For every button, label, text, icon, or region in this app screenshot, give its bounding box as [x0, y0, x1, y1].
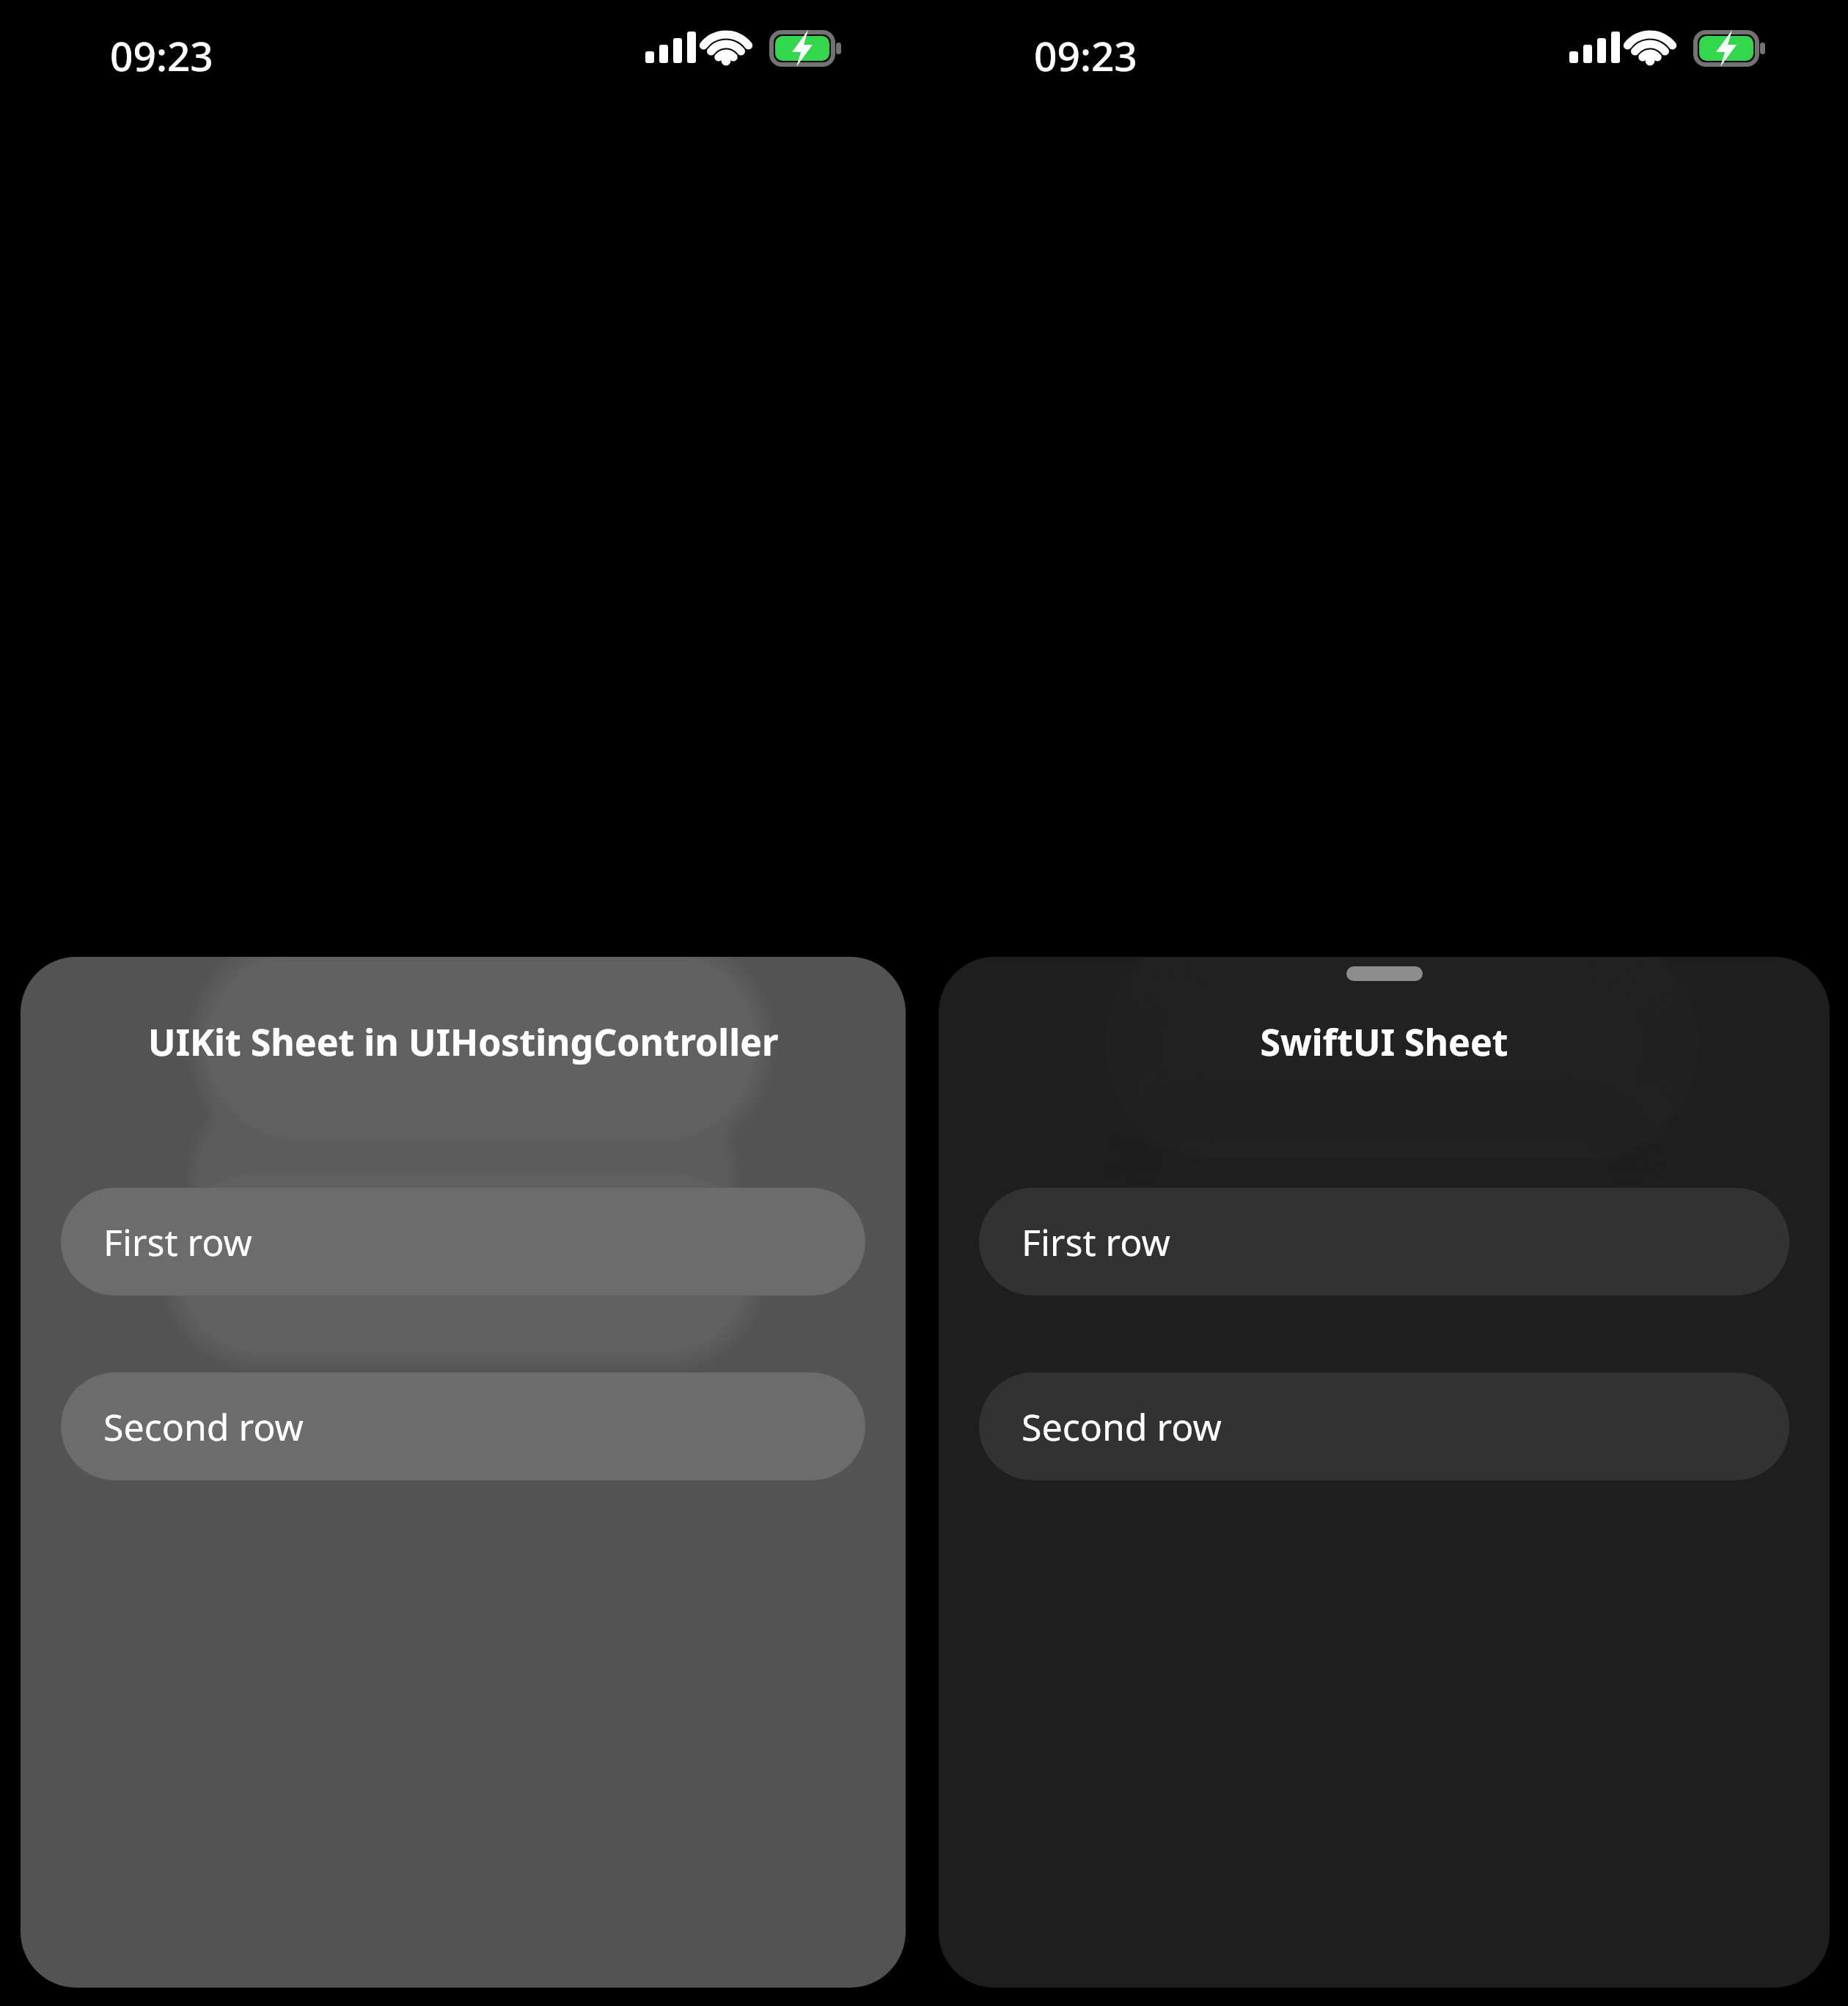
staticText: First row: [1022, 1217, 1170, 1267]
staticText: 09:23: [110, 28, 213, 83]
button[interactable]: First row: [979, 1188, 1789, 1296]
button[interactable]: Second row: [979, 1373, 1789, 1480]
other: Drag handle: [1346, 966, 1423, 981]
staticText: Second row: [1022, 1402, 1222, 1452]
staticText: First row: [103, 1217, 252, 1267]
staticText: 09:23: [1034, 28, 1137, 83]
button[interactable]: First row: [61, 1188, 865, 1296]
staticText: UIKit Sheet in UIHostingController: [21, 1017, 906, 1067]
staticText: SwiftUI Sheet: [939, 1017, 1830, 1067]
staticText: Second row: [103, 1402, 304, 1452]
button[interactable]: Second row: [61, 1373, 865, 1480]
